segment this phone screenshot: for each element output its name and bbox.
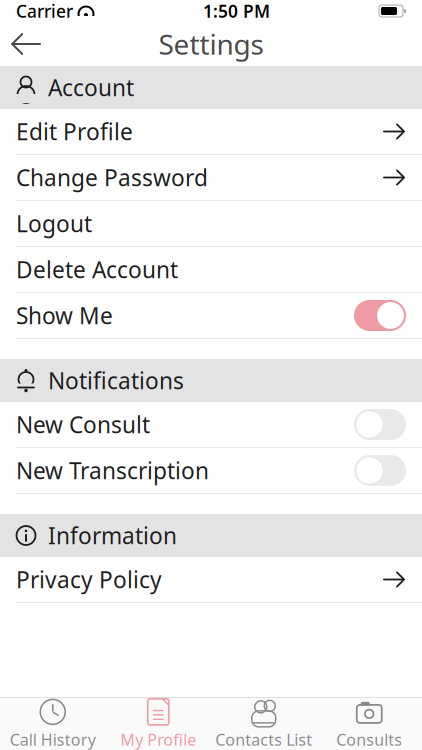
button[interactable]: My Profile	[105, 698, 211, 750]
staticText: Settings	[158, 25, 263, 63]
staticText: New Transcription	[16, 455, 209, 485]
button[interactable]: Change Password	[0, 155, 422, 200]
staticText: My Profile	[120, 729, 196, 750]
staticText: Carrier	[16, 0, 73, 22]
staticText: Contacts List	[215, 729, 312, 750]
staticText: 1:50 PM	[203, 0, 270, 22]
staticText: Logout	[16, 208, 92, 238]
staticText: New Consult	[16, 409, 150, 439]
staticText: Change Password	[16, 162, 208, 192]
button[interactable]: Contacts List	[211, 698, 316, 750]
staticText: Show Me	[16, 300, 113, 330]
staticText: Edit Profile	[16, 116, 133, 146]
staticText: Privacy Policy	[16, 564, 162, 594]
staticText: Delete Account	[16, 254, 178, 284]
button[interactable]: Privacy Policy	[0, 557, 422, 602]
button[interactable]: Delete Account	[0, 247, 422, 292]
button[interactable]: New Consult	[0, 402, 422, 447]
staticText: Consults	[336, 729, 402, 750]
button[interactable]: Show Me	[0, 293, 422, 338]
button[interactable]: Consults	[316, 698, 422, 750]
button[interactable]: Call History	[0, 698, 105, 750]
staticText: Account	[48, 72, 134, 102]
button[interactable]: Logout	[0, 201, 422, 246]
button[interactable]: New Transcription	[0, 448, 422, 493]
staticText: Call History	[10, 729, 96, 750]
staticText: Notifications	[48, 365, 184, 395]
button[interactable]: Edit Profile	[0, 109, 422, 154]
staticText: Information	[48, 520, 177, 550]
button[interactable]: Back	[0, 22, 52, 66]
